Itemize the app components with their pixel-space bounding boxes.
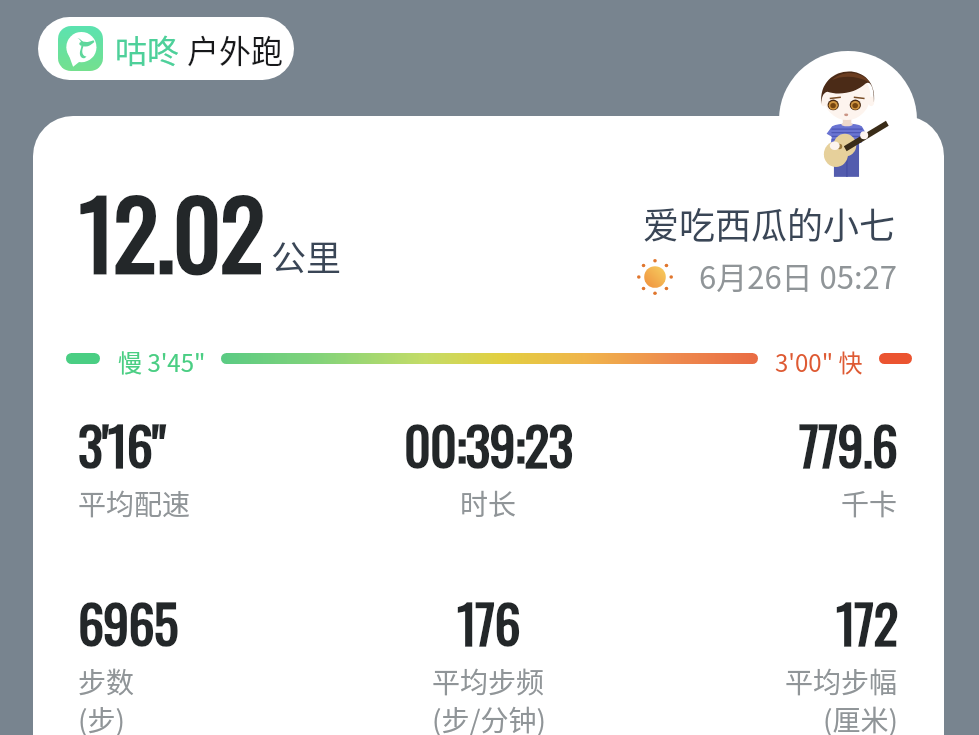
staticText: 6月26日 05:27	[699, 253, 897, 298]
staticText: 6965	[78, 584, 178, 661]
staticText: 平均步频	[432, 661, 545, 702]
staticText: 3'16"	[78, 406, 166, 483]
staticText: 779.6	[799, 406, 898, 483]
staticText: 12.02	[79, 161, 264, 300]
staticText: 平均配速	[78, 483, 191, 524]
staticText: 172	[836, 584, 898, 661]
staticText: 00:39:23	[404, 406, 573, 483]
staticText: (步/分钟)	[432, 699, 546, 735]
staticText: 爱吃西瓜的小七	[643, 197, 896, 249]
staticText: 咕咚	[115, 26, 180, 72]
staticText: 176	[457, 584, 520, 661]
staticText: 慢 3'45"	[118, 344, 206, 379]
staticText: 时长	[460, 483, 517, 524]
staticText: 步数	[78, 661, 135, 702]
staticText: (厘米)	[823, 699, 898, 735]
staticText: (步)	[78, 699, 125, 735]
button[interactable]: Profile avatar	[779, 51, 917, 189]
staticText: 户外跑	[187, 26, 284, 72]
staticText: 3'00" 快	[775, 344, 863, 379]
staticText: 公里	[271, 230, 342, 281]
staticText: 平均步幅	[785, 661, 898, 702]
staticText: 千卡	[841, 483, 898, 524]
button[interactable]: 咕咚	[38, 17, 294, 80]
